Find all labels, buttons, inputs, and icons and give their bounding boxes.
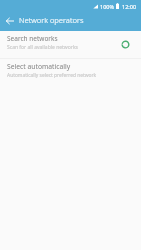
staticText: Search networks — [7, 34, 58, 43]
staticText: Automatically select preferred network — [7, 72, 97, 79]
button[interactable]: Search networks — [0, 30, 141, 58]
staticText: Network operators — [19, 15, 84, 25]
button[interactable]: Select automatically — [0, 56, 141, 84]
staticText: Scan for all available networks — [7, 44, 78, 51]
staticText: Select automatically — [7, 62, 71, 71]
staticText: 12:00 — [122, 3, 137, 10]
button[interactable]: Back — [0, 11, 19, 30]
staticText: 100% — [100, 3, 115, 10]
